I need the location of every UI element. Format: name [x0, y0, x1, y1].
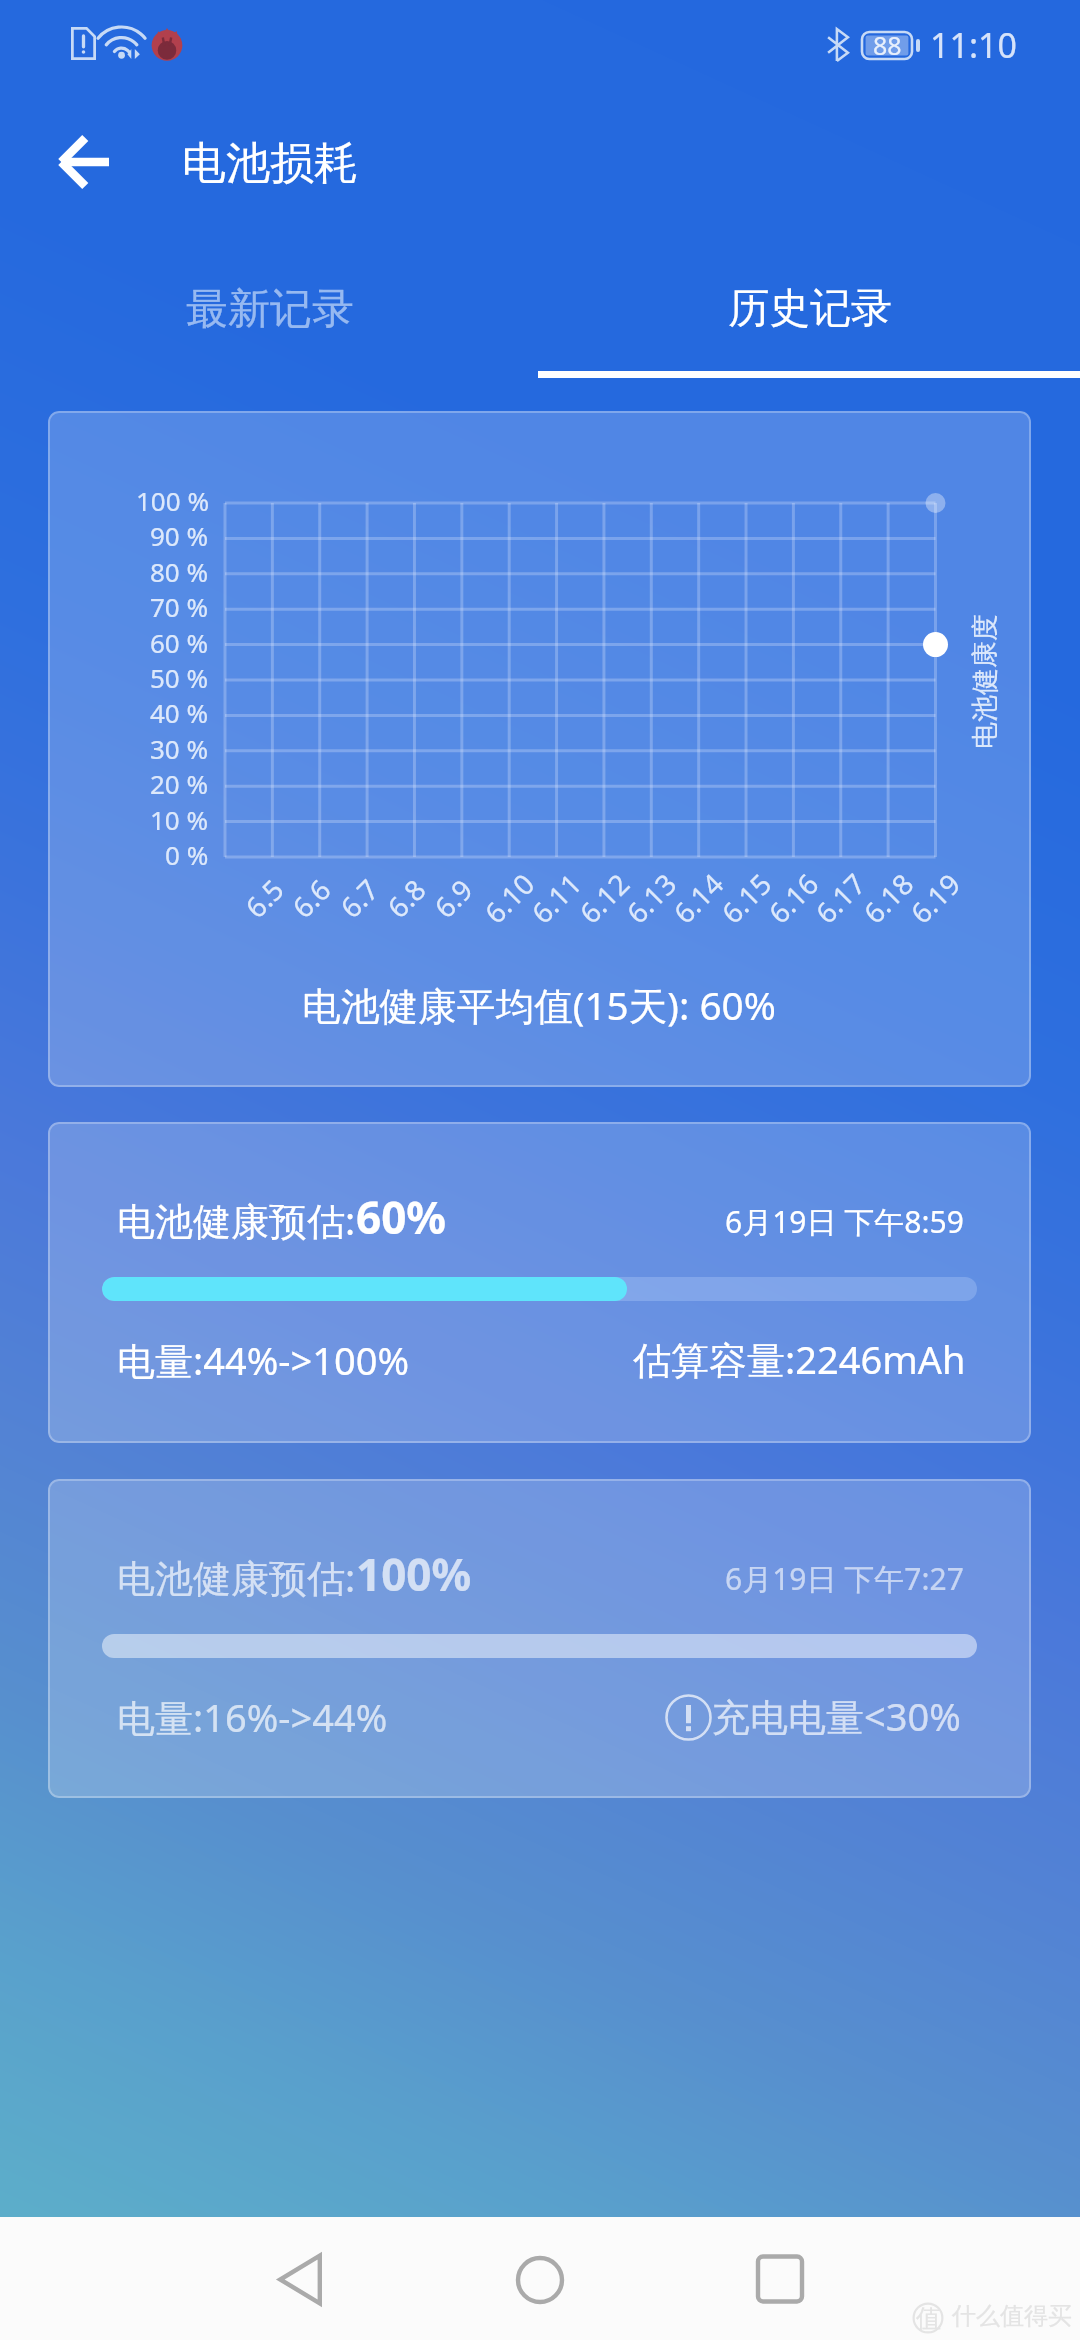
staticText: 10 % — [150, 802, 209, 837]
staticText: 什么值得买 — [952, 2301, 1072, 2331]
button[interactable]: Recent apps — [720, 2217, 840, 2340]
staticText: 100 % — [136, 483, 209, 518]
staticText: 6.7 — [331, 870, 387, 926]
staticText: 6.6 — [283, 870, 339, 926]
staticText: 6.12 — [571, 865, 637, 931]
button[interactable]: 最新记录 — [0, 243, 540, 371]
staticText: 电池健康平均值(15天): 60% — [302, 979, 776, 1032]
button[interactable]: Back — [47, 126, 119, 198]
staticText: 估算容量:2246mAh — [633, 1333, 966, 1385]
staticText: 60% — [356, 1187, 447, 1247]
staticText: 6.14 — [665, 865, 731, 931]
staticText: 6.15 — [713, 865, 779, 931]
staticText: 90 % — [150, 518, 209, 553]
button[interactable]: 电池健康预估: — [48, 1122, 1031, 1443]
staticText: 电池损耗 — [182, 136, 358, 191]
button[interactable]: 历史记录 — [540, 243, 1080, 371]
staticText: 值 — [916, 2303, 941, 2333]
staticText: 6.19 — [902, 865, 968, 931]
staticText: 6.13 — [618, 865, 684, 931]
staticText: 6.9 — [425, 870, 481, 926]
staticText: 20 % — [150, 766, 209, 801]
button[interactable]: Back — [240, 2217, 360, 2340]
staticText: 6.8 — [378, 870, 434, 926]
staticText: 70 % — [150, 589, 209, 624]
button[interactable]: 电池健康预估: — [48, 1479, 1031, 1798]
staticText: 40 % — [150, 695, 209, 730]
staticText: 历史记录 — [728, 283, 892, 335]
staticText: 6月19日 下午7:27 — [725, 1558, 964, 1599]
staticText: 0 % — [165, 837, 209, 872]
button[interactable]: Home — [480, 2217, 600, 2340]
staticText: 6.17 — [807, 865, 873, 931]
staticText: 电池健康预估: — [117, 1194, 356, 1246]
staticText: 充电电量<30% — [712, 1690, 961, 1742]
staticText: 电量:16%->44% — [117, 1691, 388, 1743]
staticText: 6.18 — [855, 865, 921, 931]
staticText: 6.11 — [523, 865, 589, 931]
staticText: 50 % — [150, 660, 209, 695]
staticText: 电量:44%->100% — [117, 1334, 409, 1386]
staticText: 80 % — [150, 554, 209, 589]
staticText: 6.10 — [476, 865, 542, 931]
staticText: 电池健康预估: — [117, 1551, 356, 1603]
staticText: 电池健康度 — [968, 614, 1002, 749]
staticText: 6月19日 下午8:59 — [725, 1201, 964, 1242]
staticText: 88 — [873, 28, 902, 55]
staticText: 6.16 — [760, 865, 826, 931]
staticText: 30 % — [150, 731, 209, 766]
staticText: 11:10 — [930, 22, 1017, 68]
staticText: 6.5 — [236, 870, 292, 926]
staticText: 60 % — [150, 625, 209, 660]
staticText: 100% — [356, 1544, 472, 1604]
staticText: 最新记录 — [186, 283, 354, 336]
